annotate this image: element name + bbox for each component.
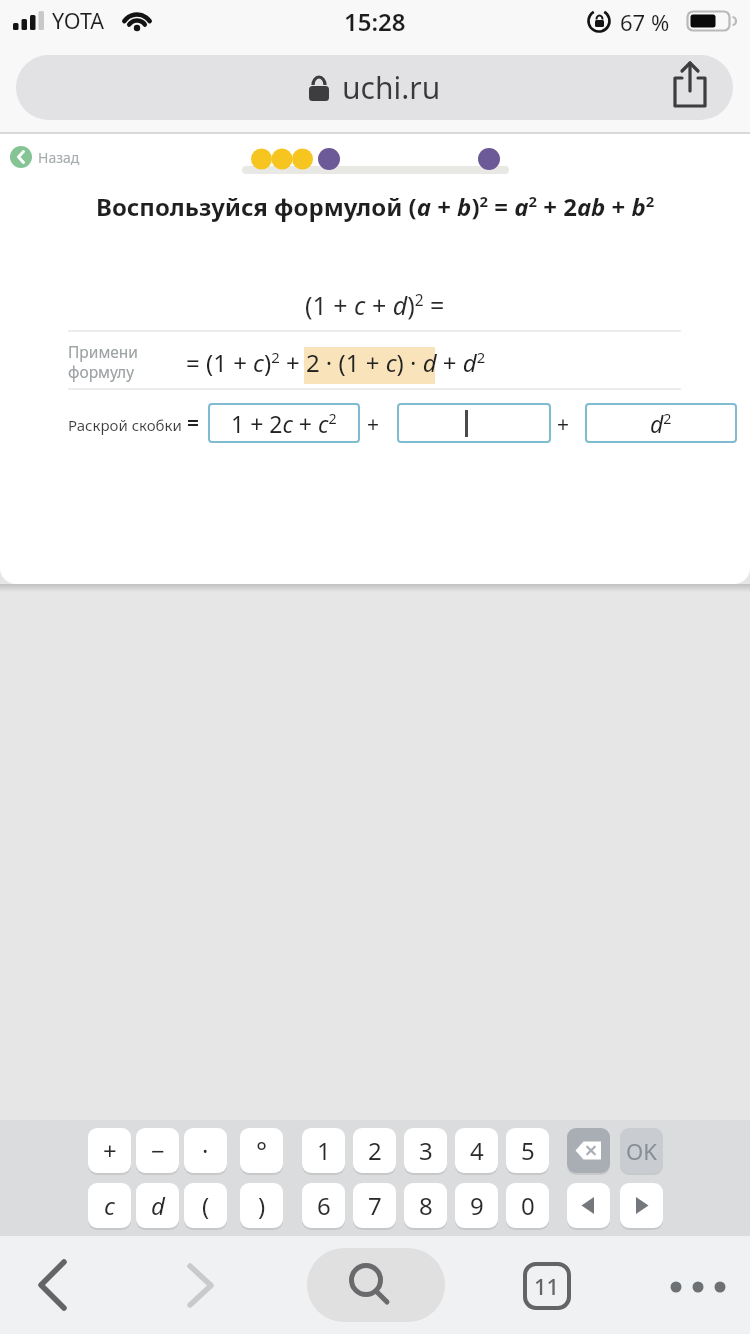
button[interactable]: 9	[455, 1183, 498, 1228]
staticText: ·	[202, 1134, 209, 1167]
staticText: −	[151, 1134, 165, 1167]
button[interactable]	[30, 1251, 80, 1321]
staticText: d	[151, 1189, 165, 1222]
button[interactable]: 1	[302, 1128, 345, 1173]
staticText: 15:28	[344, 5, 406, 38]
staticText: +	[557, 410, 570, 439]
button[interactable]: d	[136, 1183, 179, 1228]
button[interactable]: )	[240, 1183, 283, 1228]
button[interactable]: (	[184, 1183, 227, 1228]
staticText: (1 + c + d)2 =	[305, 288, 445, 322]
staticText: =	[187, 409, 200, 438]
button[interactable]	[664, 1275, 732, 1299]
staticText: °	[256, 1133, 268, 1168]
button[interactable]	[567, 1183, 610, 1228]
button[interactable]: 1 + 2c + c2	[208, 403, 360, 443]
staticText: 8	[419, 1189, 433, 1222]
staticText: 9	[470, 1189, 484, 1222]
button[interactable]	[180, 1251, 230, 1321]
staticText: 1	[317, 1134, 331, 1167]
button[interactable]: c	[88, 1183, 131, 1228]
button[interactable]: ·	[184, 1128, 227, 1173]
button[interactable]: +	[88, 1128, 131, 1173]
button[interactable]: 6	[302, 1183, 345, 1228]
staticText: 0	[521, 1189, 535, 1222]
button[interactable]: d2	[585, 403, 737, 443]
staticText: YOTA	[52, 6, 105, 35]
button[interactable]: °	[240, 1128, 283, 1173]
button[interactable]: 7	[353, 1183, 396, 1228]
staticText: +	[103, 1134, 117, 1167]
staticText: 1 + 2c + c2	[231, 408, 337, 439]
staticText: = (1 + c)2 + 2 · (1 + c) · d + d2	[186, 346, 486, 379]
button[interactable]: Назад	[10, 146, 80, 168]
button[interactable]	[664, 58, 714, 114]
staticText: Назад	[38, 148, 80, 167]
staticText: (	[202, 1189, 210, 1222]
staticText: d2	[650, 408, 672, 439]
staticText: 2	[368, 1134, 382, 1167]
button[interactable]	[307, 1248, 445, 1322]
staticText: OK	[626, 1136, 657, 1166]
button[interactable]: 11	[523, 1262, 571, 1310]
button[interactable]: 8	[404, 1183, 447, 1228]
staticText: c	[104, 1189, 115, 1222]
staticText: Воспользуйся формулой (a + b)2 = a2 + 2a…	[96, 190, 655, 223]
staticText: Раскрой скобки	[68, 415, 182, 435]
staticText: +	[367, 410, 380, 439]
staticText: )	[258, 1189, 266, 1222]
staticText: 5	[521, 1134, 535, 1167]
button[interactable]: OK	[620, 1128, 663, 1173]
staticText: 4	[470, 1134, 484, 1167]
button[interactable]: uchi.ru	[16, 55, 733, 120]
staticText: uchi.ru	[342, 67, 441, 108]
button[interactable]: 4	[455, 1128, 498, 1173]
button[interactable]: 0	[506, 1183, 549, 1228]
staticText: 7	[368, 1189, 382, 1222]
button[interactable]	[620, 1183, 663, 1228]
staticText: 6	[317, 1189, 331, 1222]
staticText: 3	[419, 1134, 433, 1167]
button[interactable]	[397, 403, 551, 443]
button[interactable]: 3	[404, 1128, 447, 1173]
button[interactable]: 2	[353, 1128, 396, 1173]
button[interactable]: 5	[506, 1128, 549, 1173]
staticText: Примени формулу	[68, 341, 138, 382]
staticText: 67 %	[620, 7, 670, 37]
button[interactable]	[567, 1128, 610, 1173]
staticText: 11	[534, 1271, 560, 1301]
button[interactable]: −	[136, 1128, 179, 1173]
